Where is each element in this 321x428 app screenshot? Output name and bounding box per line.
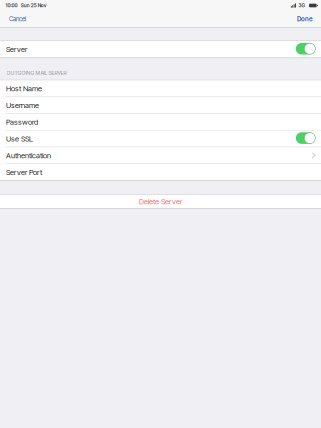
staticText: OUTGOING MAIL SERVER — [7, 69, 67, 76]
button[interactable]: Done — [290, 13, 321, 25]
button[interactable]: Cancel — [0, 13, 33, 25]
staticText: Username — [6, 101, 39, 110]
button[interactable]: Server Port — [0, 164, 321, 180]
staticText: 10:00 — [6, 2, 18, 8]
button[interactable]: Host Name — [0, 80, 321, 96]
staticText: Host Name — [6, 84, 42, 93]
staticText: Sun 25 Nov — [21, 2, 47, 8]
button[interactable]: Username — [0, 97, 321, 113]
staticText: Cancel — [9, 15, 26, 23]
staticText: Delete Server — [139, 197, 182, 206]
staticText: Done — [297, 15, 313, 23]
button[interactable]: Use SSL — [0, 131, 321, 147]
staticText: Use SSL — [6, 134, 33, 143]
staticText: Authentication — [6, 151, 51, 160]
staticText: Server — [6, 45, 27, 54]
button[interactable]: Password — [0, 114, 321, 130]
button[interactable]: Delete Server — [0, 195, 321, 208]
staticText: 3G — [298, 2, 305, 8]
staticText: Password — [6, 117, 38, 126]
staticText: Server Port — [6, 168, 42, 177]
button[interactable]: Authentication — [0, 147, 321, 163]
button[interactable]: Server — [0, 41, 321, 57]
